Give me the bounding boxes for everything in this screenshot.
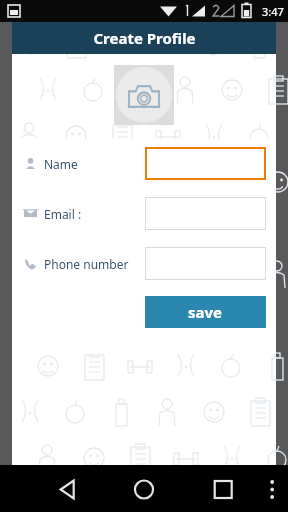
staticText: Create Profile — [93, 28, 196, 48]
staticText: save — [188, 302, 223, 322]
button[interactable]: Phone number — [145, 247, 266, 280]
button[interactable]: Change profile photo — [114, 65, 174, 125]
button[interactable]: save — [145, 296, 266, 328]
button[interactable]: Name — [145, 147, 266, 180]
staticText: Email : — [44, 206, 82, 222]
staticText: Phone number — [44, 256, 129, 272]
staticText: 3:47 — [262, 4, 284, 19]
button[interactable]: Email : — [145, 197, 266, 230]
staticText: Name — [44, 156, 78, 172]
